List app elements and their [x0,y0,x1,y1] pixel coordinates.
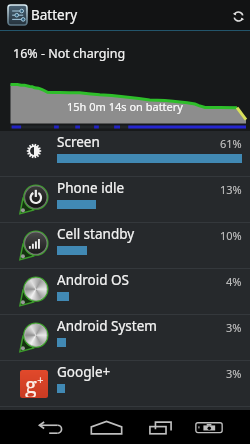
button[interactable]: Android System [0,315,250,360]
button[interactable]: Back [26,410,78,444]
button[interactable]: Screen [0,131,250,176]
staticText: Google+ [57,363,111,381]
button[interactable]: Screenshot [187,410,231,444]
staticText: Android System [57,317,157,335]
staticText: 3% [226,366,242,381]
button[interactable]: Cell standby [0,223,250,268]
button[interactable]: Home [78,410,134,444]
button[interactable]: Phone idle [0,177,250,222]
staticText: Cell standby [57,225,135,243]
staticText: Battery [31,6,78,24]
staticText: 10% [220,228,242,243]
button[interactable]: Recents [134,410,187,444]
staticText: Phone idle [57,179,125,197]
button[interactable]: g [0,361,250,406]
button[interactable]: Refresh [226,0,250,30]
staticText: 4% [226,274,242,289]
staticText: g [25,370,37,397]
staticText: 16% - Not charging [13,45,126,62]
staticText: Android OS [57,271,129,289]
button[interactable]: Battery [0,0,250,30]
staticText: 15h 0m 14s on battery [67,99,183,114]
staticText: 61% [220,136,242,151]
staticText: Screen [57,133,100,151]
staticText: + [37,372,44,388]
button[interactable]: Android OS [0,269,250,314]
staticText: 3% [226,320,242,335]
staticText: 13% [220,182,242,197]
